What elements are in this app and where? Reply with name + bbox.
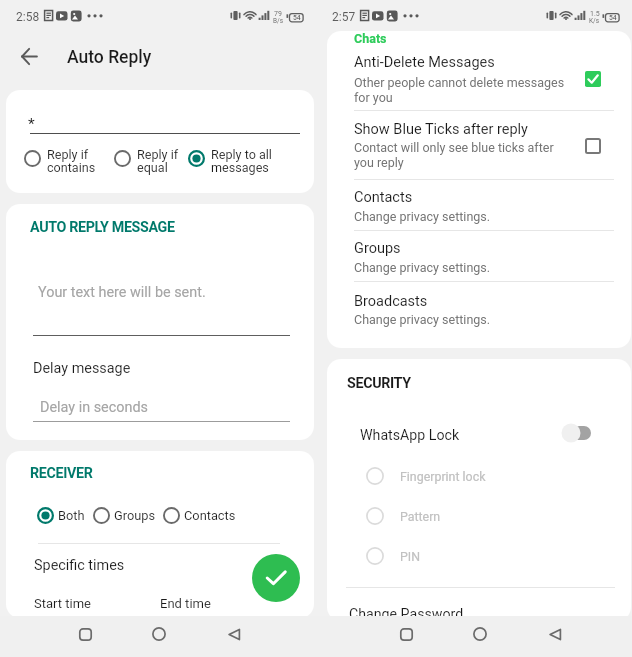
staticText: Specific times (34, 557, 125, 574)
staticText: Delay message (33, 360, 131, 377)
button[interactable]: WhatsApp Lock (560, 421, 600, 445)
staticText: K/s (589, 17, 600, 25)
button[interactable]: Recents (68, 617, 102, 651)
staticText: Both (58, 508, 85, 523)
staticText: Broadcasts (354, 293, 428, 310)
staticText: Pattern (400, 509, 441, 524)
staticText: Change privacy settings. (354, 209, 491, 224)
staticText: SECURITY (347, 375, 411, 392)
staticText: Reply to all (211, 147, 272, 162)
button[interactable]: Back (217, 617, 251, 651)
staticText: WhatsApp Lock (360, 427, 460, 444)
button[interactable]: Home (142, 617, 176, 651)
staticText: 54 (293, 14, 301, 22)
staticText: messages (211, 160, 269, 175)
staticText: Reply if (47, 147, 89, 162)
staticText: 2:58 (16, 10, 40, 24)
button[interactable]: Home (463, 617, 497, 651)
staticText: for you (354, 90, 393, 105)
staticText: contains (47, 160, 96, 175)
staticText: Delay in seconds (40, 399, 148, 416)
button[interactable]: Back (538, 617, 572, 651)
staticText: RECEIVER (30, 465, 93, 482)
staticText: Other people cannot delete messages (354, 75, 565, 90)
staticText: PIN (400, 549, 421, 564)
staticText: B/s (273, 17, 284, 25)
staticText: End time (160, 596, 211, 611)
button[interactable]: Fingerprint lock (366, 462, 486, 490)
staticText: AUTO REPLY MESSAGE (30, 219, 175, 236)
staticText: Auto Reply (67, 47, 152, 68)
staticText: Chats (354, 31, 387, 46)
staticText: Groups (114, 508, 156, 523)
button[interactable]: PIN (366, 542, 421, 570)
staticText: Contacts (354, 189, 413, 206)
button[interactable]: Disabled (579, 132, 607, 160)
staticText: Show Blue Ticks after reply (354, 121, 528, 138)
staticText: Groups (354, 240, 401, 257)
button[interactable]: Navigate up (12, 39, 46, 73)
button[interactable]: Save (252, 554, 300, 602)
button[interactable]: Reply if (24, 143, 114, 181)
button[interactable]: Contacts (163, 501, 236, 529)
staticText: you reply (354, 155, 404, 170)
button[interactable]: Reply to all (188, 143, 278, 181)
staticText: Change privacy settings. (354, 312, 491, 327)
staticText: * (28, 115, 35, 133)
staticText: Change Password (349, 606, 464, 623)
staticText: equal (137, 160, 168, 175)
staticText: 2:57 (332, 10, 356, 24)
button[interactable]: Recents (389, 617, 423, 651)
button[interactable]: Enabled (579, 65, 607, 93)
button[interactable]: Pattern (366, 502, 441, 530)
staticText: 1.5 (590, 10, 600, 18)
staticText: Your text here will be sent. (38, 284, 206, 301)
staticText: Contact will only see blue ticks after (354, 140, 554, 155)
staticText: Contacts (184, 508, 236, 523)
button[interactable]: Both (37, 501, 85, 529)
staticText: 54 (609, 14, 617, 22)
button[interactable]: Reply if (114, 143, 204, 181)
staticText: Start time (34, 596, 91, 611)
staticText: Reply if (137, 147, 179, 162)
button[interactable]: Groups (93, 501, 156, 529)
staticText: Change privacy settings. (354, 260, 491, 275)
staticText: 79 (274, 10, 282, 18)
staticText: Fingerprint lock (400, 469, 486, 484)
staticText: Anti-Delete Messages (354, 54, 495, 71)
